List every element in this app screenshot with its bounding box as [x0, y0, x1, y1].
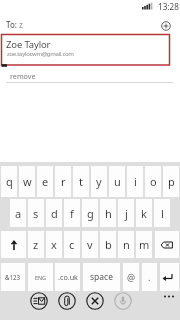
button[interactable]	[160, 290, 178, 302]
staticText: g	[87, 206, 94, 221]
staticText: o	[150, 174, 157, 189]
button[interactable]	[58, 292, 76, 310]
button[interactable]: ENG	[28, 263, 53, 291]
staticText: n	[123, 237, 130, 252]
staticText: 13:28	[158, 1, 179, 12]
staticText: f	[70, 206, 74, 221]
button[interactable]: d	[46, 199, 62, 227]
button[interactable]: n	[118, 231, 134, 258]
button[interactable]: i	[127, 166, 143, 197]
button[interactable]: p	[163, 166, 179, 197]
staticText: v	[87, 237, 93, 252]
staticText: @	[127, 271, 136, 283]
button[interactable]	[30, 292, 48, 310]
button[interactable]: @	[123, 263, 139, 291]
button[interactable]: v	[82, 231, 98, 258]
button[interactable]: w	[19, 166, 35, 197]
button[interactable]	[160, 263, 179, 291]
staticText: ENG	[35, 274, 47, 281]
button[interactable]: .	[142, 263, 157, 291]
button[interactable]: &123	[1, 263, 25, 291]
button[interactable]: u	[109, 166, 125, 197]
button[interactable]	[114, 292, 132, 310]
staticText: zoe.taylor.wm@gmail.com	[7, 50, 74, 58]
staticText: l	[161, 206, 164, 221]
staticText: To:	[6, 19, 17, 30]
staticText: a	[15, 206, 22, 221]
staticText: p	[168, 174, 175, 189]
staticText: b	[105, 237, 112, 252]
staticText: m	[139, 237, 150, 252]
button[interactable]	[0, 14, 156, 32]
staticText: s	[33, 206, 39, 221]
staticText: u	[114, 174, 121, 189]
staticText: Zoe Taylor	[6, 38, 51, 51]
button[interactable]	[1, 231, 26, 258]
staticText: r	[61, 174, 66, 189]
button[interactable]: Zoe Taylor	[3, 36, 170, 65]
staticText: y	[96, 174, 102, 189]
button[interactable]: k	[136, 199, 152, 227]
button[interactable]: m	[136, 231, 152, 258]
staticText: k	[141, 206, 147, 221]
staticText: z	[33, 237, 39, 252]
staticText: t	[79, 174, 83, 189]
button[interactable]: a	[10, 199, 26, 227]
staticText: c	[69, 237, 75, 252]
staticText: j	[125, 206, 128, 221]
button[interactable]: x	[46, 231, 62, 258]
button[interactable]: o	[145, 166, 161, 197]
staticText: h	[105, 206, 112, 221]
staticText: q	[6, 174, 13, 189]
button[interactable]	[155, 231, 179, 258]
staticText: space	[90, 271, 113, 283]
button[interactable]: q	[1, 166, 17, 197]
button[interactable]: c	[64, 231, 80, 258]
button[interactable]: .co.uk	[55, 263, 80, 291]
staticText: d	[51, 206, 58, 221]
staticText: remove	[10, 71, 36, 81]
button[interactable]: r	[55, 166, 71, 197]
button[interactable]: t	[73, 166, 89, 197]
button[interactable]: s	[28, 199, 44, 227]
staticText: x	[51, 237, 57, 252]
staticText: w	[23, 174, 32, 189]
staticText: .	[148, 271, 151, 283]
button[interactable]: g	[82, 199, 98, 227]
button[interactable]: remove	[9, 70, 45, 82]
button[interactable]: e	[37, 166, 53, 197]
staticText: z	[19, 19, 23, 30]
staticText: e	[42, 174, 49, 189]
staticText: &123	[5, 273, 21, 281]
staticText: i	[134, 174, 137, 189]
button[interactable]	[159, 19, 173, 33]
button[interactable]: l	[154, 199, 170, 227]
staticText: .co.uk	[58, 272, 78, 282]
button[interactable]: f	[64, 199, 80, 227]
button[interactable]: space	[83, 263, 120, 291]
button[interactable]: y	[91, 166, 107, 197]
button[interactable]: b	[100, 231, 116, 258]
button[interactable]: h	[100, 199, 116, 227]
button[interactable]: j	[118, 199, 134, 227]
button[interactable]: z	[28, 231, 44, 258]
button[interactable]	[86, 292, 104, 310]
